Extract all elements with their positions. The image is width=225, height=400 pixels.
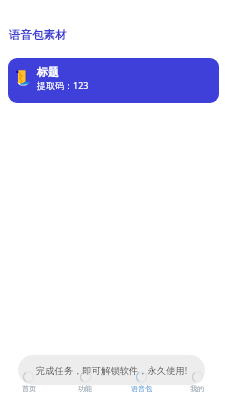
staticText: 提取码：123 (37, 79, 89, 91)
button[interactable]: 功能 (57, 371, 113, 400)
button[interactable]: 首页 (0, 371, 57, 400)
staticText: 完成任务，即可解锁软件，永久使用! (36, 364, 188, 377)
button[interactable]: 语音包 (113, 371, 169, 400)
staticText: 语音包素材 (9, 28, 67, 42)
staticText: 首页 (22, 384, 36, 393)
button[interactable]: 我的 (169, 371, 225, 400)
staticText: 功能 (78, 384, 92, 393)
staticText: 我的 (190, 384, 204, 393)
button[interactable]: 标题 (8, 58, 219, 103)
staticText: 标题 (37, 65, 59, 79)
button[interactable]: 完成任务，即可解锁软件，永久使用! (18, 355, 205, 385)
staticText: 语音包 (131, 384, 152, 393)
